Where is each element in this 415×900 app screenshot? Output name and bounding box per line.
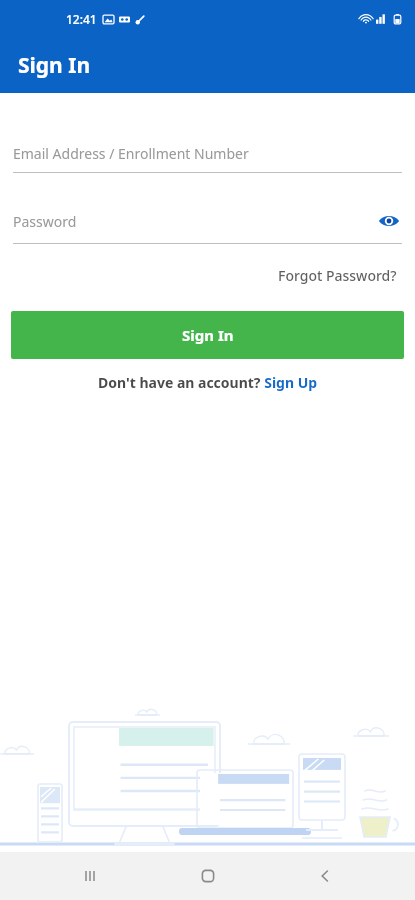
staticText: Password [13, 212, 376, 231]
button[interactable]: Email Address / Enrollment Number [13, 144, 402, 173]
button[interactable]: Sign In [11, 311, 404, 359]
staticText: 12:41 [66, 11, 97, 27]
staticText: Sign In [182, 325, 234, 345]
button[interactable]: Forgot Password? [274, 262, 401, 289]
button[interactable]: Show password [376, 208, 402, 234]
button[interactable]: Home [180, 852, 236, 900]
button[interactable]: Password [13, 208, 402, 244]
staticText: Forgot Password? [278, 266, 397, 285]
button[interactable]: Don't have an account? Sign Up [94, 369, 322, 396]
staticText: Sign In [18, 51, 91, 80]
button[interactable]: Recent apps [62, 852, 118, 900]
staticText: Email Address / Enrollment Number [13, 144, 402, 163]
staticText: Don't have an account? Sign Up [98, 373, 318, 392]
button[interactable]: Back [297, 852, 353, 900]
